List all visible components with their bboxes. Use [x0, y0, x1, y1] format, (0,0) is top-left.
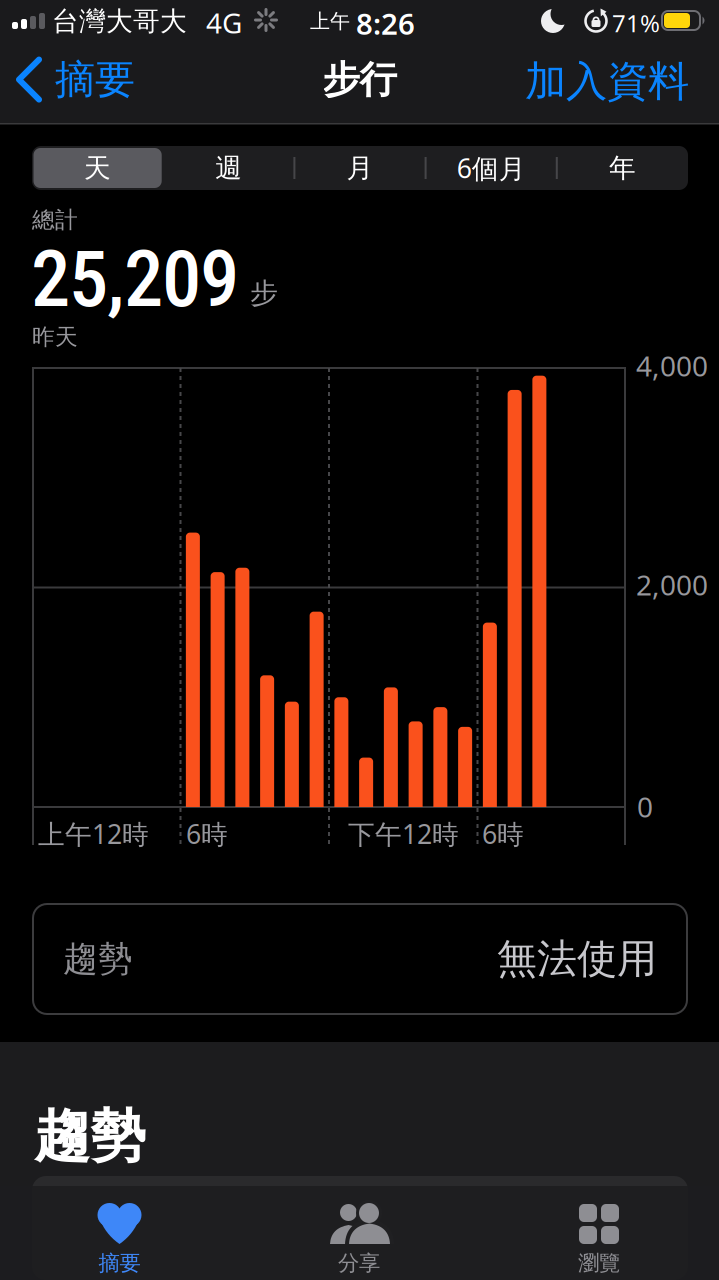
- button[interactable]: 天: [32, 146, 163, 190]
- staticText: 4,000: [636, 347, 708, 384]
- staticText: 上午12時: [38, 816, 149, 851]
- button[interactable]: 週: [163, 146, 294, 190]
- button[interactable]: 月: [294, 146, 426, 190]
- staticText: 71%: [612, 7, 660, 39]
- staticText: 月: [346, 152, 373, 184]
- staticText: 下午12時: [348, 816, 459, 851]
- button[interactable]: 年: [557, 146, 688, 190]
- staticText: 6個月: [457, 150, 526, 186]
- staticText: 0: [637, 788, 653, 825]
- button[interactable]: 分享: [239, 1198, 479, 1276]
- staticText: 年: [609, 152, 636, 184]
- staticText: 趨勢: [34, 1102, 146, 1171]
- staticText: 步行: [322, 57, 396, 103]
- staticText: 步: [250, 276, 278, 310]
- staticText: 台灣大哥大: [52, 5, 187, 38]
- button[interactable]: 瀏覽: [479, 1198, 719, 1276]
- staticText: 8:26: [356, 4, 415, 43]
- staticText: 4G: [206, 4, 242, 41]
- staticText: 加入資料: [525, 56, 689, 107]
- staticText: 6時: [186, 816, 228, 851]
- staticText: 瀏覽: [578, 1250, 620, 1276]
- button[interactable]: 趨勢: [32, 903, 688, 1015]
- button[interactable]: 返回摘要: [15, 55, 135, 104]
- staticText: 摘要: [55, 55, 135, 104]
- staticText: 週: [215, 152, 242, 184]
- staticText: 無法使用: [497, 934, 657, 983]
- staticText: 總計: [32, 206, 78, 234]
- staticText: 上午: [310, 9, 350, 34]
- staticText: 昨天: [32, 323, 78, 351]
- staticText: 天: [84, 152, 111, 184]
- staticText: 6時: [482, 816, 524, 851]
- staticText: 2,000: [636, 566, 708, 603]
- staticText: 分享: [338, 1250, 380, 1276]
- button[interactable]: 摘要: [0, 1198, 239, 1276]
- button[interactable]: 加入資料: [525, 56, 689, 107]
- button[interactable]: 6個月: [426, 146, 557, 190]
- staticText: 趨勢: [63, 938, 133, 980]
- staticText: 摘要: [98, 1250, 140, 1276]
- staticText: 25,209: [31, 233, 239, 325]
